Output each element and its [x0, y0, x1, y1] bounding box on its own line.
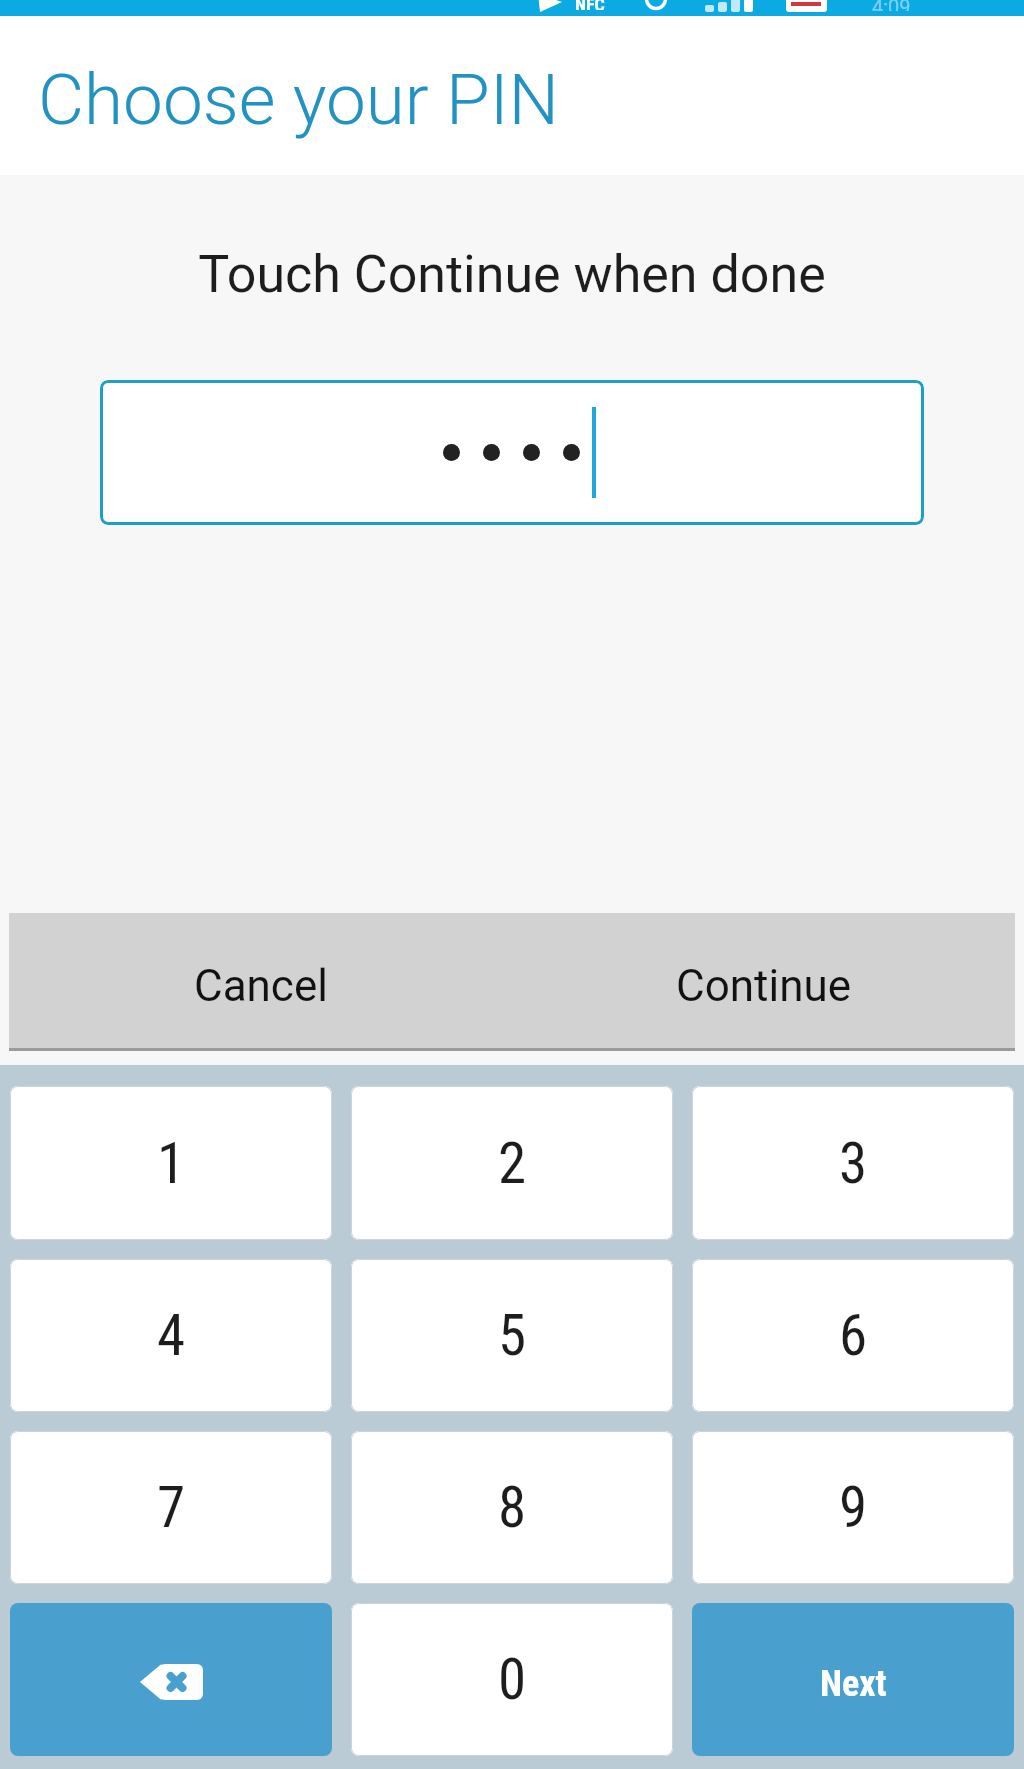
staticText: 4: [157, 1302, 186, 1369]
button[interactable]: 4: [10, 1259, 332, 1412]
button[interactable]: 6: [692, 1259, 1014, 1412]
button[interactable]: 8: [351, 1431, 673, 1584]
staticText: 1: [157, 1130, 186, 1197]
staticText: 9: [839, 1474, 868, 1541]
button[interactable]: 9: [692, 1431, 1014, 1584]
staticText: Touch Continue when done: [0, 244, 1024, 305]
staticText: Choose your PIN: [38, 58, 560, 141]
button[interactable]: 1: [10, 1086, 332, 1240]
button[interactable]: Continue: [512, 913, 1015, 1051]
button[interactable]: Next: [692, 1603, 1014, 1756]
staticText: 2: [498, 1130, 527, 1197]
button[interactable]: [10, 1603, 332, 1756]
staticText: 8: [498, 1474, 527, 1541]
button[interactable]: 2: [351, 1086, 673, 1240]
staticText: 5: [498, 1302, 527, 1369]
staticText: Continue: [676, 960, 852, 1012]
staticText: 3: [839, 1130, 868, 1197]
button[interactable]: 7: [10, 1431, 332, 1584]
button[interactable]: 3: [692, 1086, 1014, 1240]
staticText: NFC: [575, 0, 605, 10]
staticText: 7: [157, 1474, 186, 1541]
button[interactable]: [100, 380, 924, 525]
staticText: 4:09: [872, 0, 911, 11]
staticText: Next: [820, 1663, 887, 1705]
staticText: Cancel: [194, 960, 328, 1012]
button[interactable]: Cancel: [9, 913, 512, 1051]
staticText: 0: [498, 1646, 527, 1713]
button[interactable]: 0: [351, 1603, 673, 1756]
button[interactable]: 5: [351, 1259, 673, 1412]
staticText: 6: [839, 1302, 868, 1369]
